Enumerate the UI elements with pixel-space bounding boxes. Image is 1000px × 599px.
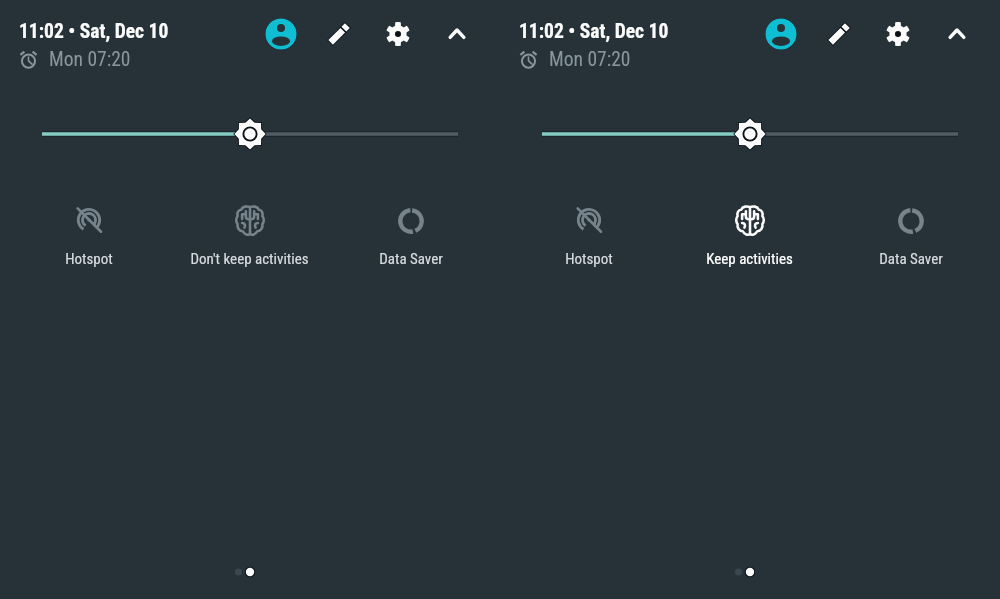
button[interactable]: Page 2 of 2 bbox=[733, 560, 757, 584]
staticText: Mon 07:20 bbox=[549, 48, 631, 71]
button[interactable]: Settings bbox=[882, 18, 914, 50]
staticText: 11:02 • Sat, Dec 10 bbox=[519, 20, 669, 43]
button[interactable]: Page 2 of 2 bbox=[233, 560, 257, 584]
button[interactable]: Don't keep activities bbox=[169, 205, 330, 269]
button[interactable]: Edit bbox=[823, 18, 855, 50]
button[interactable]: Hotspot bbox=[9, 205, 169, 269]
button[interactable]: Settings bbox=[382, 18, 414, 50]
staticText: Data Saver bbox=[379, 250, 443, 268]
button[interactable]: Collapse bbox=[941, 18, 973, 50]
button[interactable]: Collapse bbox=[441, 18, 473, 50]
button[interactable]: Brightness bbox=[26, 114, 474, 154]
staticText: Mon 07:20 bbox=[49, 48, 131, 71]
staticText: Hotspot bbox=[565, 250, 613, 268]
staticText: Hotspot bbox=[65, 250, 113, 268]
button[interactable]: Account bbox=[265, 18, 297, 50]
button[interactable]: Edit bbox=[323, 18, 355, 50]
staticText: 11:02 • Sat, Dec 10 bbox=[19, 20, 169, 43]
button[interactable]: Data Saver bbox=[830, 205, 991, 269]
staticText: Don't keep activities bbox=[190, 250, 309, 268]
staticText: Data Saver bbox=[879, 250, 943, 268]
button[interactable]: Brightness bbox=[526, 114, 974, 154]
button[interactable]: Data Saver bbox=[330, 205, 491, 269]
staticText: Keep activities bbox=[706, 250, 793, 268]
button[interactable]: Hotspot bbox=[509, 205, 669, 269]
button[interactable]: Keep activities bbox=[669, 205, 830, 269]
button[interactable]: Account bbox=[765, 18, 797, 50]
